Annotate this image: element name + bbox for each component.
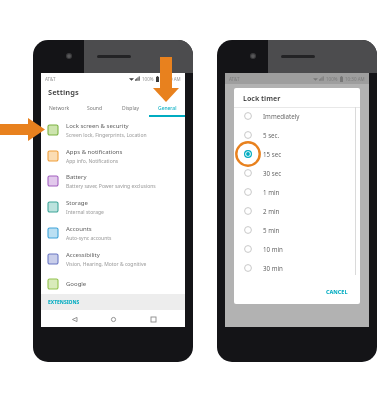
staticText: General [158,105,177,112]
button[interactable]: Accounts [41,220,185,246]
staticText: 2 min [263,207,280,215]
staticText: 5 sec. [263,131,280,139]
button[interactable]: Google [41,271,185,297]
button[interactable]: Recents [146,312,160,326]
staticText: Storage [66,199,88,207]
staticText: Display [122,105,140,112]
staticText: Google [66,280,87,288]
staticText: 15 sec [263,150,282,158]
staticText: 100% [326,76,338,82]
staticText: Sound [87,105,103,112]
button[interactable]: 1 min [234,182,360,201]
staticText: Immediately [263,112,300,120]
staticText: Vision, Hearing, Motor & cognitive [66,261,147,268]
staticText: 100% [142,76,154,82]
button[interactable]: Storage [41,194,185,220]
staticText: Lock timer [243,94,281,104]
staticText: 5 min [263,226,280,234]
staticText: 30 sec [263,169,282,177]
button[interactable]: Lock screen & security [41,117,185,143]
staticText: Apps & notifications [66,148,123,156]
button[interactable]: 30 sec [234,163,360,182]
button[interactable]: Network [41,99,77,117]
button[interactable]: 15 sec [234,144,360,163]
button[interactable]: Sound [77,99,113,117]
button[interactable]: Home [106,312,120,326]
staticText: Accessibility [66,251,100,259]
button[interactable]: General [149,99,185,117]
button[interactable]: Apps & notifications [41,143,185,169]
staticText: AT&T [229,76,240,82]
staticText: Battery saver, Power saving exclusions [66,183,156,190]
button[interactable]: 5 min [234,220,360,239]
button[interactable]: Display [113,99,149,117]
button[interactable]: 5 sec. [234,125,360,144]
button[interactable]: Accessibility [41,246,185,272]
staticText: App info, Notifications [66,158,119,165]
staticText: Internal storage [66,209,104,216]
button[interactable]: 10 min [234,239,360,258]
staticText: AT&T [45,76,56,82]
staticText: Auto-sync accounts [66,235,112,242]
staticText: 10:30 AM [345,76,365,82]
staticText: 10 min [263,245,283,253]
button[interactable]: CANCEL [326,288,348,295]
staticText: 1 min [263,188,280,196]
staticText: 10:30 AM [161,76,181,82]
staticText: Battery [66,173,87,181]
button[interactable]: 2 min [234,201,360,220]
button[interactable]: Immediately [234,106,360,125]
staticText: EXTENSIONS [48,299,80,306]
button[interactable]: Back [67,312,81,326]
staticText: Accounts [66,225,92,233]
staticText: Lock screen & security [66,122,129,130]
staticText: Network [49,105,70,112]
staticText: Settings [48,87,79,97]
button[interactable]: Battery [41,168,185,194]
button[interactable]: 30 min [234,258,360,277]
staticText: Screen lock, Fingerprints, Location [66,132,147,139]
staticText: 30 min [263,264,283,272]
